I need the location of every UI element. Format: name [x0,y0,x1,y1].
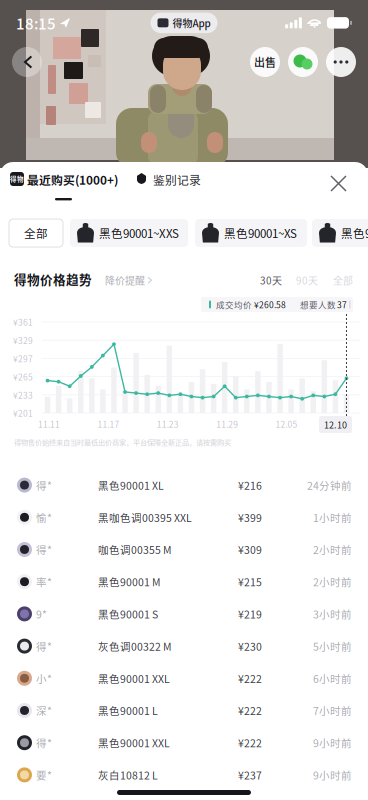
staticText: ¥399 [238,510,262,525]
staticText: 11.23 [157,418,179,430]
staticText: ¥309 [238,542,262,557]
staticText: ¥222 [238,735,262,750]
staticText: 全部 [24,225,48,241]
staticText: ¥260.58 [254,298,286,311]
button[interactable]: 黑色90001~S [312,219,368,247]
button[interactable]: 9* [0,598,368,630]
button[interactable]: 得* [0,630,368,662]
staticText: 黑色90001 XXL [98,671,170,686]
button[interactable]: 得* [0,469,368,501]
staticText: ¥222 [238,671,262,686]
staticText: 咖色调00355 M [98,542,172,557]
staticText: 灰白10812 L [98,767,158,782]
button[interactable]: 深* [0,694,368,727]
staticText: 9小时前 [313,735,352,750]
button[interactable]: 出售 [250,47,280,77]
button[interactable]: 更多 [326,47,356,77]
button[interactable]: 得* [0,727,368,759]
staticText: 出售 [254,54,276,70]
staticText: 2小时前 [313,542,352,557]
button[interactable]: 90天 [0,266,324,293]
staticText: 率* [36,574,52,589]
button[interactable]: 得* [0,533,368,566]
button[interactable]: 黑色90001~XS [195,219,307,247]
staticText: 6小时前 [313,671,352,686]
button[interactable]: 要* [0,759,368,791]
staticText: 得* [36,477,52,493]
staticText: ¥329 [13,334,33,346]
staticText: 得* [36,735,52,750]
staticText: ¥297 [13,352,33,365]
staticText: 90天 [296,273,318,287]
button[interactable]: 得物 [0,162,127,206]
staticText: 黑色90001~XS [224,225,297,241]
button[interactable]: 关闭 [0,162,355,200]
button[interactable]: 愉* [0,501,368,533]
staticText: 黑色90001 L [98,703,158,718]
staticText: 全部 [333,273,353,287]
staticText: ¥230 [238,638,262,654]
staticText: 11.29 [216,418,238,430]
staticText: 得物售价始终来自当时最低出价商家，平台保障全新正品，请按需购买 [14,437,231,447]
staticText: 2小时前 [313,574,352,589]
staticText: 得物价格趋势 [14,270,92,288]
staticText: ¥216 [238,477,262,493]
button[interactable]: 黑色90001~XXS [70,219,188,247]
staticText: ¥215 [238,574,262,589]
staticText: 12.10 [324,418,347,431]
staticText: 3小时前 [313,606,352,621]
staticText: 灰色调00322 M [98,638,172,654]
staticText: 得物App [172,16,210,30]
button[interactable]: 率* [0,566,368,598]
staticText: 要* [36,767,52,782]
staticText: 11.17 [97,418,119,430]
staticText: 12.05 [276,418,298,430]
staticText: 得* [36,542,52,557]
button[interactable]: 小* [0,662,368,694]
button[interactable]: 分享到微信 [288,47,318,77]
staticText: 深* [36,703,52,718]
staticText: 小* [36,671,52,686]
button[interactable]: 降价提醒 [0,266,151,287]
staticText: 24分钟前 [307,477,352,493]
staticText: 降价提醒 [105,273,145,287]
staticText: 黑色90001 XL [98,477,164,493]
staticText: 愉* [36,510,52,525]
button[interactable]: 全部 [0,266,359,293]
staticText: ¥233 [13,389,33,401]
staticText: 想要人数 [300,298,336,311]
staticText: 30天 [260,273,282,287]
staticText: 5小时前 [313,638,352,654]
button[interactable]: 全部 [9,219,63,247]
staticText: 1小时前 [313,510,352,525]
staticText: ¥219 [238,606,262,621]
staticText: 黑色90001 S [98,606,158,621]
staticText: 9小时前 [313,767,352,782]
staticText: ¥201 [13,407,33,419]
button[interactable]: 30天 [0,266,288,293]
staticText: 鉴别记录 [153,171,201,188]
staticText: ¥237 [238,767,262,782]
staticText: 最近购买(1000+) [27,171,118,188]
staticText: ¥361 [13,316,33,328]
staticText: 37 [337,298,347,311]
staticText: 9* [36,606,47,621]
button[interactable]: 鉴别记录 [0,162,213,196]
staticText: 黑咖色调00395 XXL [98,510,192,525]
staticText: 黑色90001~S [341,225,368,241]
staticText: 黑色90001~XXS [99,225,179,241]
staticText: 11.11 [38,418,60,430]
staticText: ¥222 [238,703,262,718]
staticText: ¥265 [13,371,33,383]
staticText: 黑色90001 M [98,574,161,589]
staticText: 18:15 [16,12,56,34]
staticText: 得物 [10,174,24,184]
staticText: 黑色90001 XXL [98,735,170,750]
staticText: 得* [36,638,52,654]
button[interactable]: 返回 [12,47,42,77]
staticText: 成交均价 [216,298,252,311]
staticText: 7小时前 [313,703,352,718]
